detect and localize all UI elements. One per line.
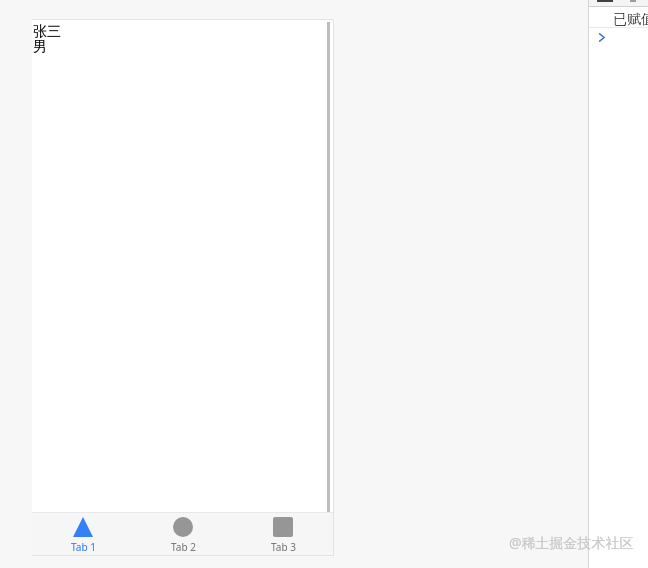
button[interactable]: Expand node xyxy=(594,29,611,46)
staticText: 男 xyxy=(33,38,47,56)
staticText: 张三 xyxy=(33,23,61,41)
staticText: @稀土掘金技术社区 xyxy=(509,533,634,552)
button[interactable]: Tab 2 xyxy=(135,513,231,555)
staticText: 男 xyxy=(33,38,47,56)
button[interactable]: Tab 1 xyxy=(35,513,131,555)
staticText: Tab 2 xyxy=(171,540,196,554)
staticText: 已赋值 xyxy=(613,11,648,29)
staticText: Tab 3 xyxy=(271,540,296,554)
button[interactable]: Tab 3 xyxy=(235,513,331,555)
staticText: Tab 1 xyxy=(71,540,96,554)
staticText: 张三 xyxy=(33,23,61,41)
